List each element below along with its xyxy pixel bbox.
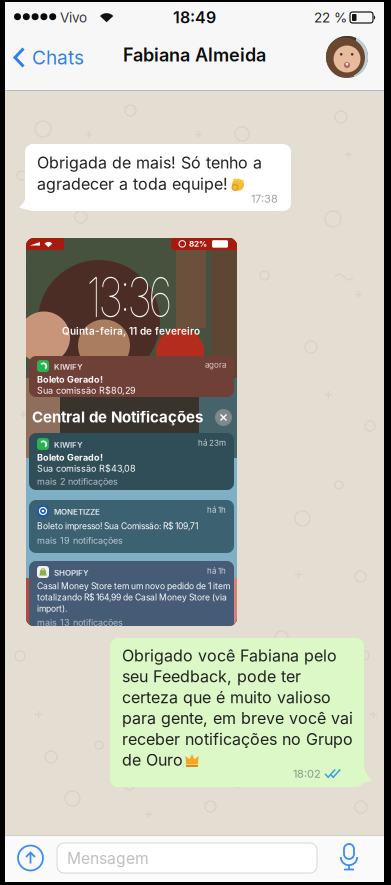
staticText: 18:49 bbox=[173, 8, 216, 27]
staticText: 18:02 bbox=[293, 767, 321, 780]
staticText: Casal Money Store tem um novo pedido de … bbox=[37, 581, 230, 591]
staticText: para gente, em breve você vai bbox=[122, 709, 353, 728]
staticText: receber notificações no Grupo bbox=[122, 729, 353, 749]
staticText: 13:36 bbox=[72, 264, 187, 330]
staticText: Boleto Gerado! bbox=[37, 452, 103, 463]
staticText: seu Feedback, pode ter bbox=[122, 667, 301, 686]
staticText: agora bbox=[205, 360, 226, 370]
staticText: MONETIZZE bbox=[54, 507, 100, 517]
button[interactable]: Back to Chats bbox=[5, 32, 76, 55]
staticText: KIWIFY bbox=[54, 440, 83, 450]
staticText: import). bbox=[37, 604, 67, 614]
staticText: há 1h bbox=[207, 505, 226, 515]
button[interactable]: Share bbox=[5, 835, 30, 860]
staticText: mais 19 notificações bbox=[37, 535, 123, 546]
staticText: totalizando R$ 164,99 de Casal Money Sto… bbox=[37, 592, 227, 603]
staticText: SHOPIFY bbox=[54, 568, 89, 578]
button[interactable]: Record voice message bbox=[5, 835, 27, 861]
staticText: Quinta-feira, 11 de fevereiro bbox=[62, 325, 200, 337]
staticText: há 1h bbox=[207, 566, 226, 576]
staticText: KIWIFY bbox=[54, 362, 83, 372]
button[interactable]: Photo message bbox=[5, 2, 216, 390]
staticText: certeza que é muito valioso bbox=[122, 688, 331, 707]
staticText: há 23m bbox=[198, 438, 226, 448]
staticText: 22 % bbox=[314, 9, 347, 26]
staticText: Obrigado você Fabiana pelo bbox=[122, 646, 337, 665]
staticText: Central de Notificações bbox=[32, 408, 203, 426]
staticText: agradecer a toda equipe! bbox=[37, 174, 228, 194]
staticText: Vivo bbox=[60, 9, 87, 26]
staticText: de Ouro bbox=[122, 750, 183, 770]
staticText: Sua comissão R$43,08 bbox=[37, 463, 136, 474]
staticText: Boleto impresso! Sua Comissão: R$ 109,71 bbox=[37, 521, 198, 531]
button[interactable]: Mensagem bbox=[5, 835, 265, 865]
staticText: Mensagem bbox=[67, 849, 149, 868]
staticText: Sua comissão R$80,29 bbox=[37, 385, 136, 396]
button[interactable]: Contact info bbox=[5, 32, 47, 74]
staticText: mais 2 notificações bbox=[37, 476, 118, 487]
staticText: 17:38 bbox=[251, 192, 278, 205]
staticText: Chats bbox=[32, 46, 84, 69]
staticText: 82% bbox=[189, 239, 207, 249]
staticText: Fabiana Almeida bbox=[123, 44, 266, 66]
staticText: Obrigada de mais! Só tenho a bbox=[37, 153, 262, 172]
staticText: Boleto Gerado! bbox=[37, 374, 103, 385]
staticText: mais 13 notificações bbox=[37, 617, 123, 628]
